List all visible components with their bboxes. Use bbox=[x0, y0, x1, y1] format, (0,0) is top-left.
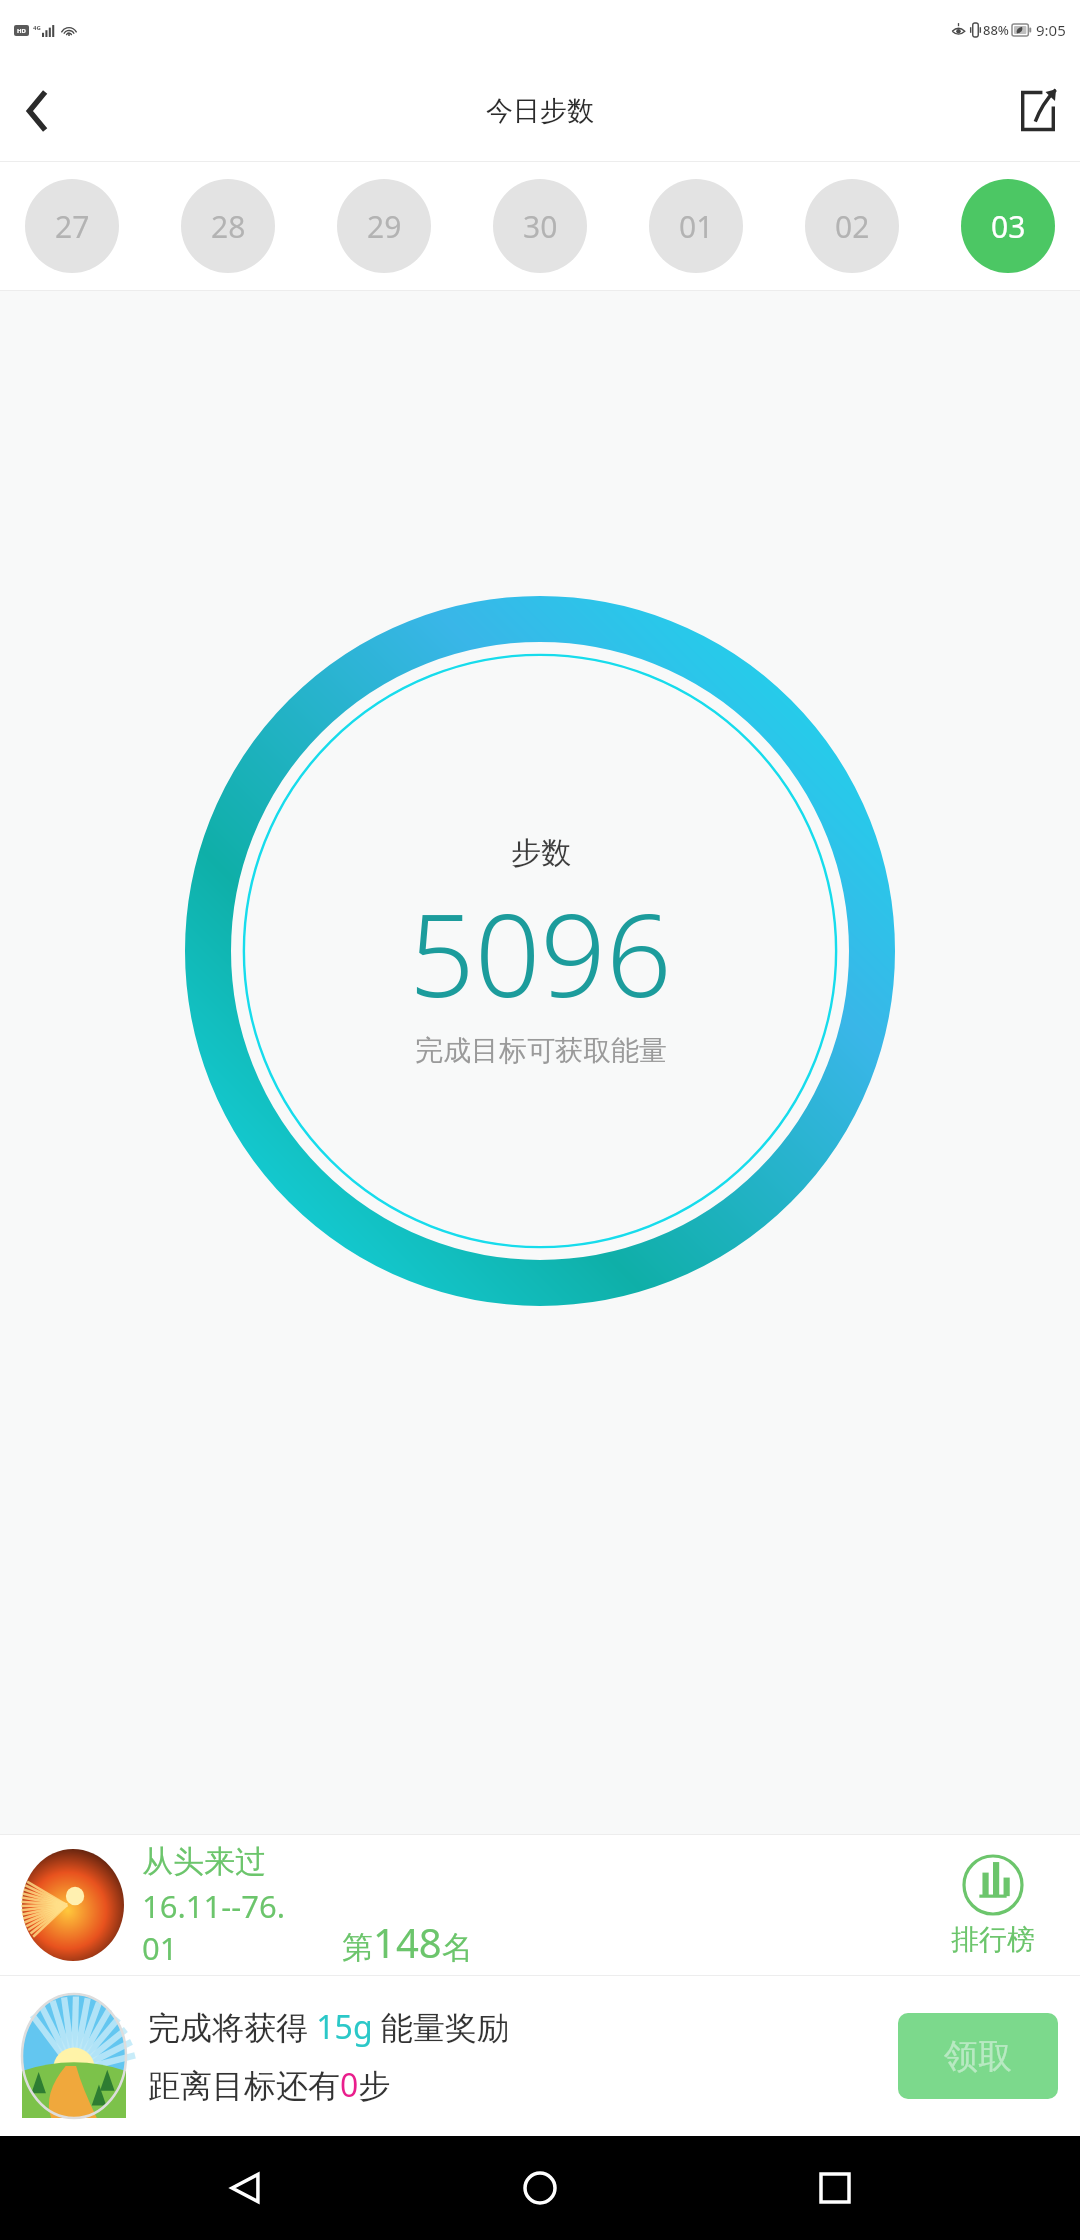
staticText: 03 bbox=[991, 206, 1026, 247]
staticText: 第148名 bbox=[342, 1915, 473, 1969]
staticText: 01 bbox=[679, 206, 714, 247]
button[interactable]: Share bbox=[996, 69, 1080, 153]
staticText: 排行榜 bbox=[951, 1922, 1035, 1957]
button[interactable]: Recents bbox=[785, 2138, 885, 2238]
button[interactable]: 30 bbox=[493, 179, 587, 273]
staticText: 距离目标还有0步 bbox=[148, 2063, 391, 2107]
staticText: 完成将获得 15g 能量奖励 bbox=[148, 2005, 509, 2049]
staticText: 02 bbox=[835, 206, 870, 247]
button[interactable]: 排行榜 bbox=[928, 1835, 1058, 1975]
staticText: 领取 bbox=[944, 2035, 1012, 2078]
button[interactable]: Home bbox=[490, 2138, 590, 2238]
button[interactable]: Back bbox=[0, 74, 74, 148]
staticText: 今日步数 bbox=[486, 94, 594, 128]
staticText: 16.11--76. 01 bbox=[142, 1885, 342, 1969]
button[interactable]: 28 bbox=[181, 179, 275, 273]
staticText: HD bbox=[17, 27, 26, 35]
staticText: 28 bbox=[211, 206, 246, 247]
staticText: 27 bbox=[55, 206, 90, 247]
staticText: 从头来过 bbox=[142, 1842, 266, 1881]
staticText: 步数 bbox=[511, 834, 571, 872]
staticText: 30 bbox=[523, 206, 558, 247]
button[interactable]: 01 bbox=[649, 179, 743, 273]
button[interactable]: Back bbox=[195, 2138, 295, 2238]
button[interactable]: 03 bbox=[961, 179, 1055, 273]
staticText: 5096 bbox=[409, 874, 672, 1031]
button[interactable]: 27 bbox=[25, 179, 119, 273]
button[interactable]: 29 bbox=[337, 179, 431, 273]
staticText: 88% bbox=[983, 21, 1009, 39]
staticText: 完成目标可获取能量 bbox=[415, 1033, 667, 1068]
button[interactable]: 02 bbox=[805, 179, 899, 273]
button[interactable]: 领取 bbox=[898, 2013, 1058, 2099]
staticText: 4G bbox=[33, 24, 41, 32]
button[interactable]: 从头来过 bbox=[0, 1835, 1080, 1975]
staticText: 29 bbox=[367, 206, 402, 247]
staticText: 9:05 bbox=[1036, 20, 1066, 40]
